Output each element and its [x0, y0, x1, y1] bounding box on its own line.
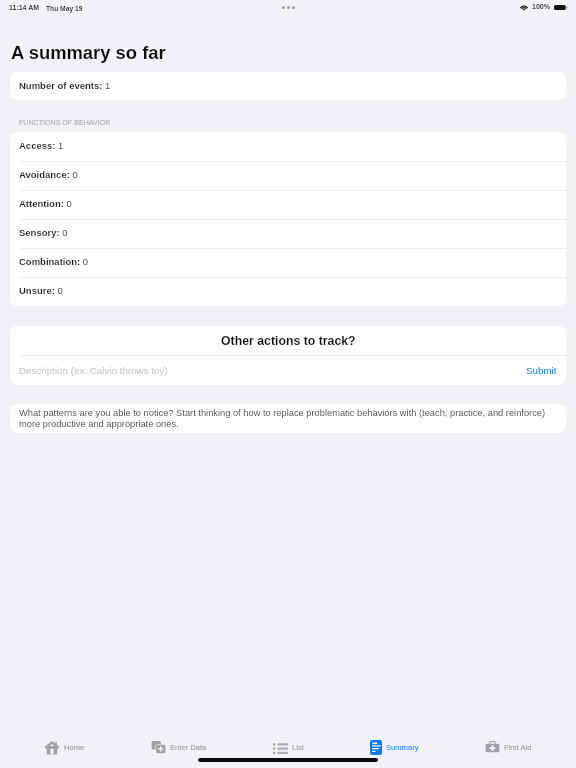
staticText: FUNCTIONS OF BEHAVIOR — [19, 119, 111, 127]
staticText: Unsure: 0 — [19, 285, 63, 296]
staticText: Access: 1 — [19, 140, 64, 151]
button[interactable]: Enter Data tab — [147, 734, 211, 760]
staticText: Summary — [386, 743, 419, 751]
staticText: First Aid — [504, 743, 532, 751]
staticText: Enter Data — [170, 743, 207, 751]
staticText: Other actions to track? — [221, 334, 356, 348]
button[interactable]: Summary tab — [366, 734, 423, 760]
button[interactable]: Attention: 0 — [10, 190, 566, 219]
staticText: Sensory: 0 — [19, 227, 68, 238]
button[interactable]: Description (ex. Calvin throws toy) — [10, 356, 517, 385]
staticText: What patterns are you able to notice? St… — [19, 408, 557, 429]
staticText: Combination: 0 — [19, 256, 89, 267]
staticText: 11:14 AM — [9, 4, 40, 12]
staticText: 100% — [532, 3, 550, 11]
staticText: Home — [64, 743, 85, 751]
staticText: Number of events: 1 — [19, 80, 111, 91]
staticText: Description (ex. Calvin throws toy) — [19, 365, 168, 376]
button[interactable]: Access: 1 — [10, 132, 566, 161]
button[interactable]: Home tab — [40, 734, 89, 760]
button[interactable]: List tab — [269, 734, 308, 760]
button[interactable]: Sensory: 0 — [10, 219, 566, 248]
button[interactable]: Unsure: 0 — [10, 277, 566, 306]
button[interactable]: Submit — [517, 356, 566, 385]
staticText: Submit — [526, 365, 557, 376]
button[interactable]: First Aid tab — [481, 734, 536, 760]
staticText: Avoidance: 0 — [19, 169, 78, 180]
button[interactable]: Avoidance: 0 — [10, 161, 566, 190]
button[interactable]: Combination: 0 — [10, 248, 566, 277]
staticText: Attention: 0 — [19, 198, 72, 209]
staticText: Thu May 19 — [46, 5, 83, 12]
staticText: List — [292, 743, 304, 751]
staticText: A summary so far — [11, 42, 166, 63]
